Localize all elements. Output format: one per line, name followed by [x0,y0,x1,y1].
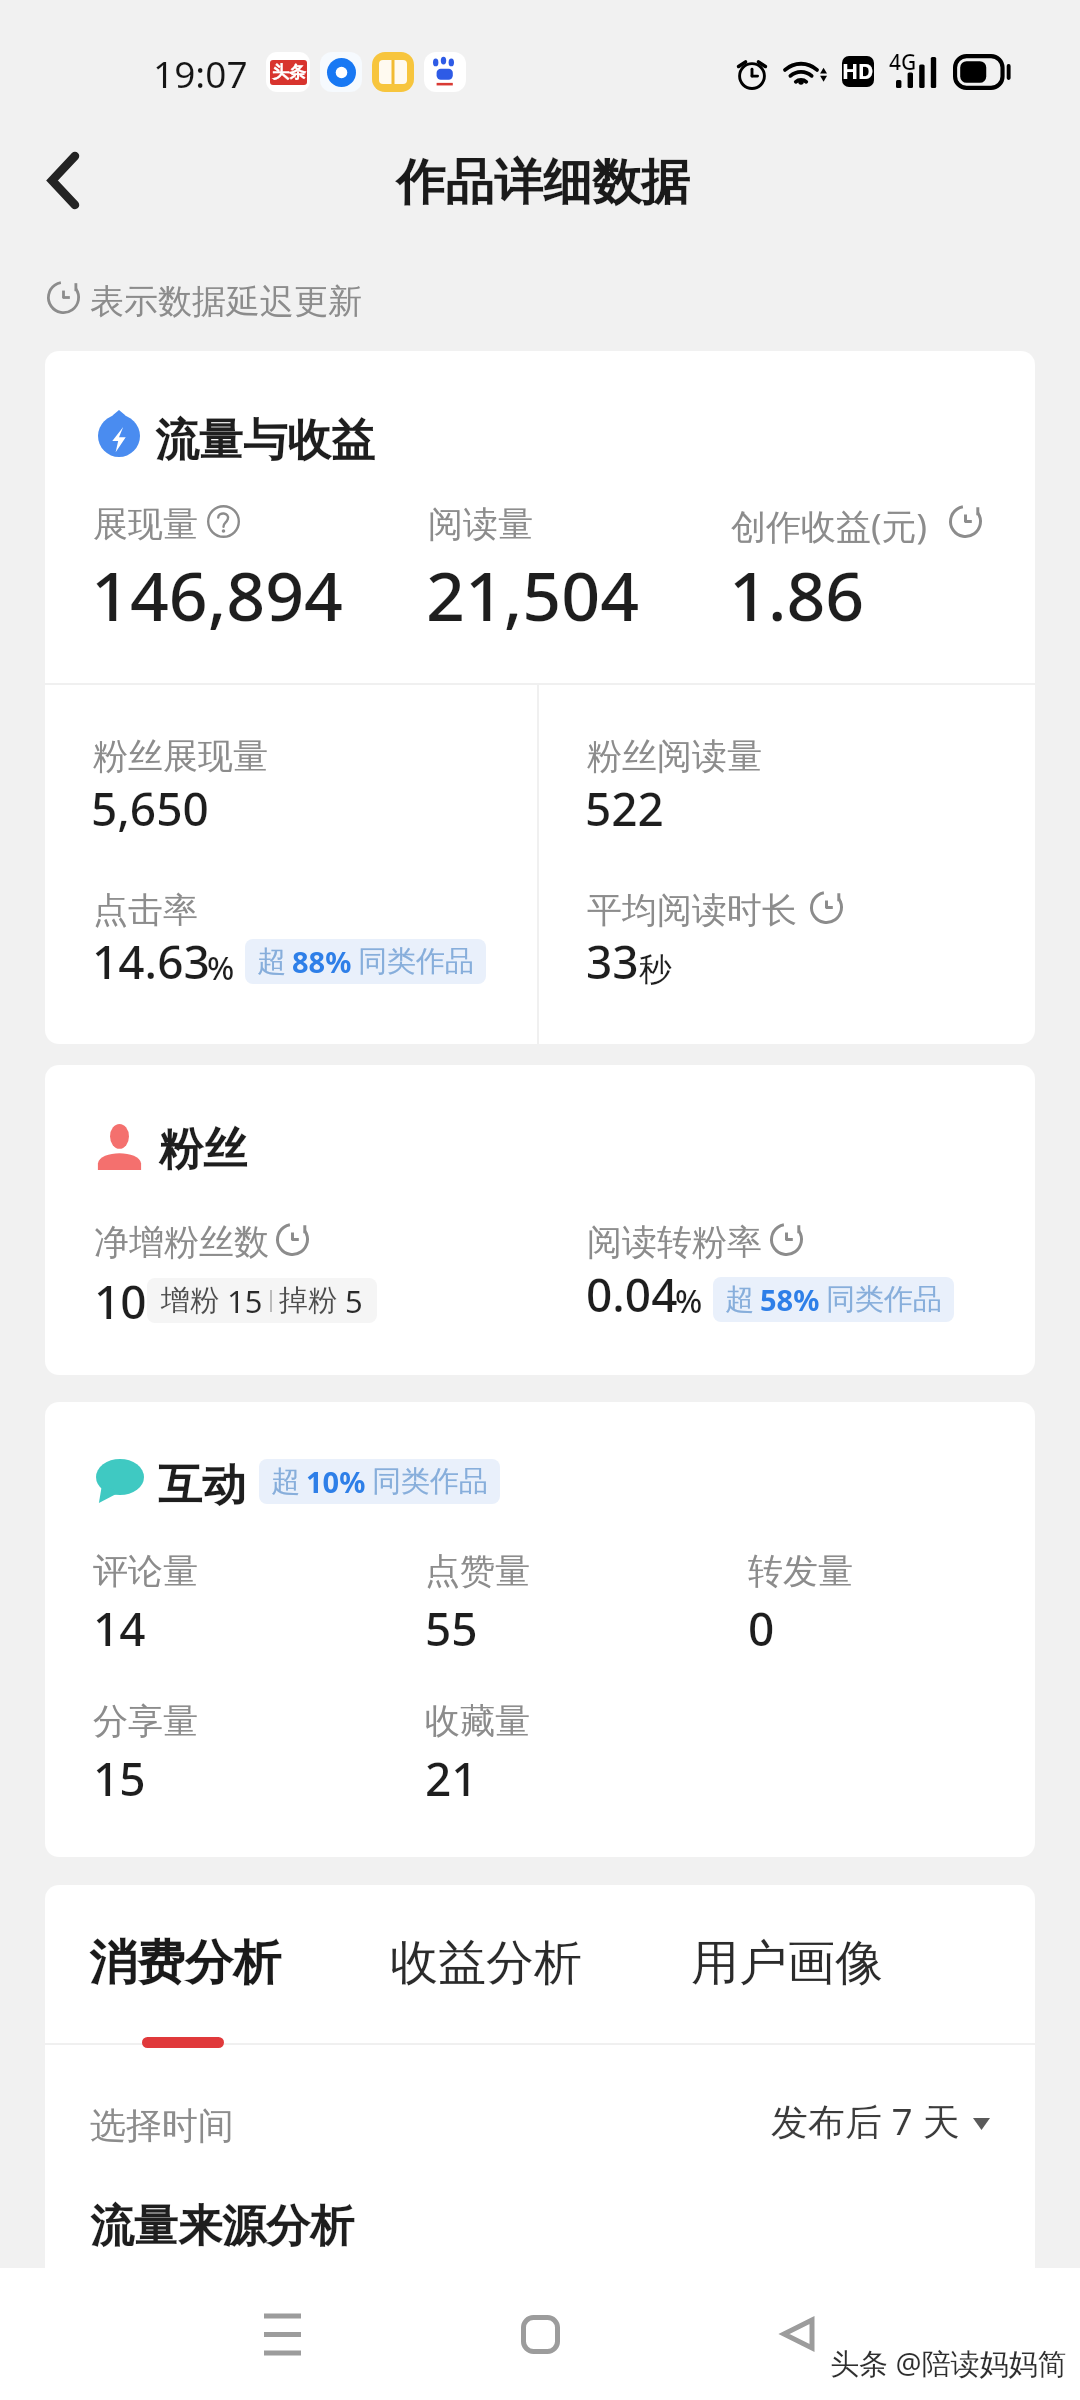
staticText: 收益分析 [390,1933,582,1993]
staticText: 同类作品 [826,1281,942,1318]
staticText: 流量与收益 [155,413,375,468]
staticText: 33 [586,930,639,993]
staticText: 超 [257,943,286,980]
staticText: 粉丝阅读量 [587,734,762,778]
staticText: 流量来源分析 [90,2199,354,2254]
staticText: 5,650 [91,777,209,840]
staticText: 收藏量 [425,1699,530,1743]
staticText: 同类作品 [372,1463,488,1500]
button[interactable]: 发布后 7 天 [771,2095,990,2146]
staticText: 增粉 [161,1282,219,1319]
staticText: 分享量 [93,1699,198,1743]
staticText: 21,504 [426,548,640,641]
staticText: 创作收益(元) [731,502,928,550]
staticText: 评论量 [93,1549,198,1593]
staticText: 秒 [639,949,672,991]
staticText: 转发量 [748,1549,853,1593]
button[interactable]: 消费分析 [45,1908,330,2018]
button[interactable]: Recent apps [232,2284,332,2384]
button[interactable]: 互动 [45,1402,1035,1857]
button[interactable]: 收益分析 [341,1908,631,2018]
staticText: 表示数据延迟更新 [90,280,362,323]
staticText: 15 [93,1747,146,1810]
staticText: 5 [345,1280,363,1322]
staticText: 选择时间 [90,2103,234,2148]
staticText: 10 [94,1270,147,1333]
staticText: 超 [725,1281,754,1318]
staticText: % [207,946,235,990]
staticText: 头条 [272,62,306,83]
staticText: 522 [585,777,664,840]
button[interactable]: Back [748,2284,848,2384]
staticText: 展现量 [93,502,198,546]
staticText: 用户画像 [691,1933,883,1993]
staticText: 55 [425,1597,478,1660]
staticText: 4G [889,48,917,77]
button[interactable]: Back [13,130,113,230]
staticText: 146,894 [91,548,343,641]
staticText: 21 [425,1747,478,1810]
staticText: 阅读转粉率 [587,1220,762,1264]
staticText: 粉丝 [159,1122,247,1177]
staticText: 15 [227,1280,263,1322]
staticText: 平均阅读时长 [587,888,797,932]
staticText: 净增粉丝数 [94,1220,269,1264]
staticText: 14 [93,1597,146,1660]
staticText: 点赞量 [425,1549,530,1593]
staticText: 88% [292,942,352,981]
button[interactable]: 粉丝 [45,1065,1035,1375]
staticText: 14.63 [92,930,210,993]
button[interactable]: 流量与收益 [45,351,1035,1044]
staticText: 掉粉 [279,1282,337,1319]
staticText: 头条 @陪读妈妈简 [830,2343,1067,2383]
staticText: 0.04 [586,1263,678,1326]
staticText: 1.86 [729,548,865,641]
staticText: HD [842,57,874,86]
staticText: 发布后 7 天 [771,2095,960,2146]
staticText: 消费分析 [89,1933,281,1993]
staticText: 19:07 [153,48,248,98]
staticText: 同类作品 [358,943,474,980]
staticText: 粉丝展现量 [93,734,268,778]
staticText: 阅读量 [428,502,533,546]
staticText: 10% [306,1462,366,1501]
staticText: 0 [748,1597,775,1660]
button[interactable]: 用户画像 [642,1908,932,2018]
staticText: 58% [760,1280,820,1319]
staticText: 点击率 [93,888,198,932]
staticText: 超 [271,1463,300,1500]
staticText: % [675,1279,703,1323]
button[interactable]: Home [490,2284,590,2384]
staticText: 互动 [158,1458,246,1513]
staticText: 作品详细数据 [396,152,690,214]
